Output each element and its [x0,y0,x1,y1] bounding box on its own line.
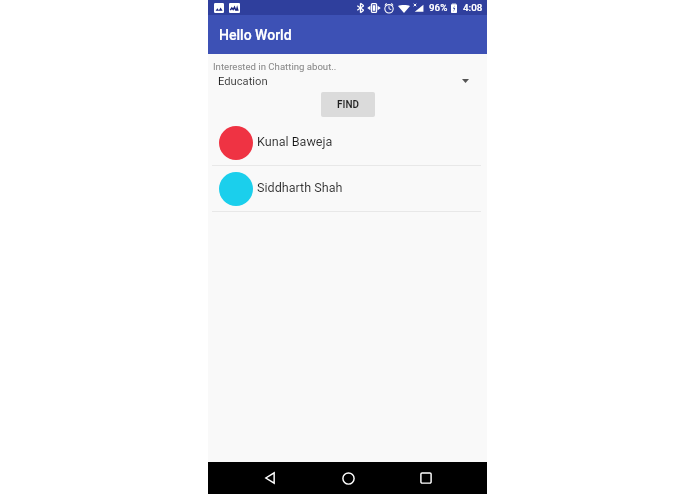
staticText: Hello World [219,27,292,43]
button[interactable]: Siddharth Shah [208,166,487,211]
button[interactable]: FIND [321,92,375,117]
staticText: Interested in Chatting about.. [213,61,337,72]
button[interactable]: Back [245,462,295,494]
button[interactable]: Home [323,462,373,494]
button[interactable]: Kunal Baweja [208,120,487,165]
button[interactable]: Education [208,74,487,88]
button[interactable]: Recent apps [401,462,451,494]
staticText: 4:08 [463,2,483,13]
staticText: Education [218,75,268,88]
staticText: Siddharth Shah [257,180,343,195]
staticText: FIND [337,99,359,111]
staticText: Kunal Baweja [257,134,333,149]
staticText: 96% [429,2,448,13]
